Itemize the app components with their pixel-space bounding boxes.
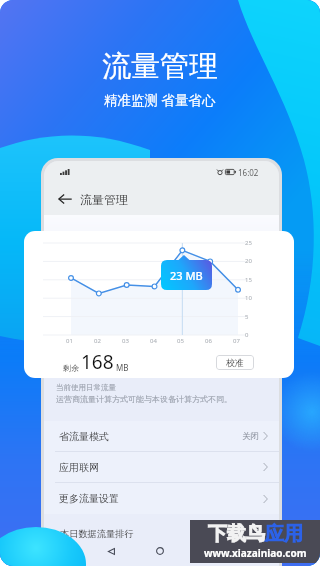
staticText: 省流量模式 [59,430,109,443]
staticText: 关闭 [242,431,259,442]
staticText: 流量管理 [80,192,128,207]
button[interactable]: 应用联网 [44,452,279,483]
staticText: 03 [122,337,129,345]
button[interactable]: 省流量模式 [44,421,279,452]
staticText: 16:02 [238,167,259,178]
staticText: 0 [245,331,249,339]
staticText: 流量管理 [102,48,218,85]
staticText: 07 [233,337,240,345]
staticText: 校准 [226,357,244,368]
staticText: 04 [150,337,157,345]
staticText: 更多流量设置 [59,492,119,505]
button[interactable]: 返回 [98,538,124,564]
staticText: 本日数据流量排行 [60,528,134,540]
button[interactable]: 更多流量设置 [44,483,279,514]
staticText: 应用联网 [59,461,99,474]
staticText: 05 [177,337,184,345]
staticText: 当前使用日常流量 [56,383,116,392]
staticText: 剩余 [63,363,79,373]
staticText: 5 [245,313,249,321]
staticText: 15 [245,276,252,284]
button[interactable]: 校准 [216,355,254,370]
staticText: 06 [205,337,212,345]
staticText: 运营商流量计算方式可能与本设备计算方式不同。 [56,394,232,404]
staticText: 168 [81,349,114,375]
staticText: www.xiazainiao.com [204,546,307,560]
staticText: 02 [94,337,101,345]
staticText: 应用 [265,522,303,546]
staticText: 20 [245,257,252,265]
staticText: 23 MB [170,268,203,283]
staticText: MB [116,362,129,373]
staticText: 25 [245,239,252,247]
button[interactable]: 返回 [58,192,72,206]
staticText: 精准监测 省量省心 [104,91,216,109]
staticText: 下载鸟 [208,522,265,546]
button[interactable]: 主页 [147,538,173,564]
staticText: 01 [66,337,73,345]
staticText: 10 [245,294,252,302]
